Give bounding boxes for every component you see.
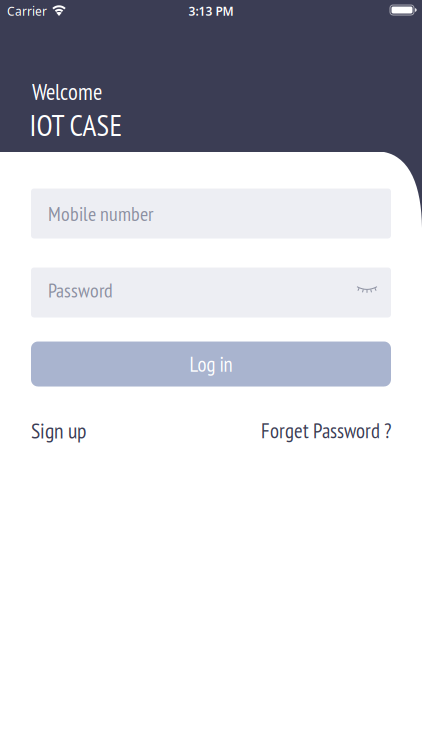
staticText: Forget Password ? bbox=[261, 417, 391, 444]
staticText: Welcome bbox=[32, 77, 102, 106]
button[interactable]: Sign up bbox=[31, 416, 86, 444]
staticText: Sign up bbox=[31, 416, 86, 444]
button[interactable]: Log in bbox=[31, 341, 391, 386]
staticText: Log in bbox=[189, 351, 232, 377]
staticText: 3:13 PM bbox=[188, 3, 233, 19]
staticText: Password bbox=[48, 277, 113, 303]
staticText: Mobile number bbox=[48, 201, 153, 226]
staticText: IOT CASE bbox=[29, 106, 122, 144]
staticText: Carrier bbox=[7, 3, 47, 19]
button[interactable]: Forget Password ? bbox=[261, 417, 391, 444]
button[interactable]: Show password bbox=[357, 285, 377, 294]
